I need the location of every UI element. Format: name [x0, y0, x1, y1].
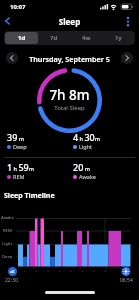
button[interactable]: [6, 52, 18, 64]
button[interactable]: 20 m: [73, 161, 96, 180]
staticText: Light: [79, 143, 93, 150]
staticText: 1y: [115, 34, 122, 42]
button[interactable]: 4w: [70, 32, 102, 44]
staticText: 22:30: [5, 277, 18, 284]
staticText: 39 m: [7, 131, 24, 143]
staticText: 1 h 59m: [7, 161, 34, 173]
staticText: Deep: [2, 254, 13, 260]
staticText: Light: [2, 241, 12, 247]
staticText: REM: [3, 228, 12, 234]
staticText: Deep: [13, 143, 27, 150]
staticText: Awake: [1, 215, 14, 221]
button[interactable]: zZ: [8, 267, 17, 276]
staticText: 7h 8m: [0, 86, 139, 104]
button[interactable]: 39 m: [7, 131, 27, 150]
staticText: zZ: [10, 269, 15, 274]
staticText: 06:54: [120, 277, 133, 284]
button[interactable]: [122, 15, 134, 28]
staticText: 4 h 30m: [73, 131, 100, 143]
staticText: 10:07: [10, 3, 26, 11]
staticText: 4w: [82, 34, 91, 42]
button[interactable]: 1 h 59m: [7, 161, 34, 180]
staticText: 20 m: [73, 161, 90, 173]
button[interactable]: [121, 52, 133, 64]
staticText: Thursday, September 5: [0, 54, 139, 64]
button[interactable]: 1y: [102, 32, 134, 44]
button[interactable]: [1, 14, 15, 28]
staticText: REM: [13, 173, 25, 180]
staticText: Sleep: [0, 16, 139, 27]
staticText: 7d: [50, 34, 58, 42]
staticText: Total Sleep: [0, 104, 139, 112]
button[interactable]: 7d: [38, 32, 70, 44]
button[interactable]: 1d: [5, 32, 38, 44]
button[interactable]: 4 h 30m: [73, 131, 100, 150]
staticText: Sleep Timeline: [4, 191, 55, 201]
staticText: Awake: [79, 173, 96, 180]
staticText: 1d: [18, 34, 26, 42]
